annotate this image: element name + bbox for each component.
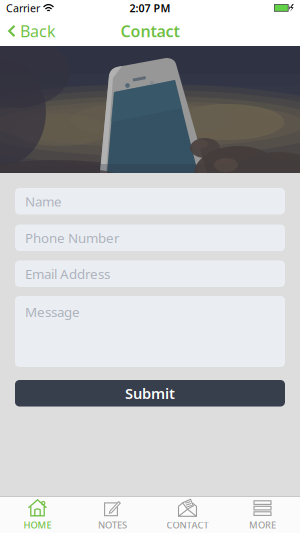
button[interactable]: NOTES <box>75 499 150 531</box>
staticText: HOME <box>23 519 51 531</box>
staticText: Email Address <box>25 265 110 283</box>
button[interactable]: MORE <box>225 499 300 531</box>
staticText: Message <box>25 303 80 321</box>
button[interactable]: Submit <box>15 380 285 406</box>
staticText: NOTES <box>98 519 127 531</box>
staticText: Contact <box>120 20 179 42</box>
button[interactable]: CONTACT <box>150 499 225 531</box>
staticText: Back <box>20 20 56 42</box>
staticText: 2:07 PM <box>129 1 170 15</box>
button[interactable]: Back <box>0 20 56 42</box>
staticText: Submit <box>125 383 175 403</box>
staticText: Name <box>25 192 62 210</box>
staticText: Phone Number <box>25 229 120 247</box>
button[interactable]: HOME <box>0 499 75 531</box>
staticText: CONTACT <box>166 519 208 531</box>
staticText: Carrier <box>6 1 40 15</box>
staticText: MORE <box>249 519 276 531</box>
